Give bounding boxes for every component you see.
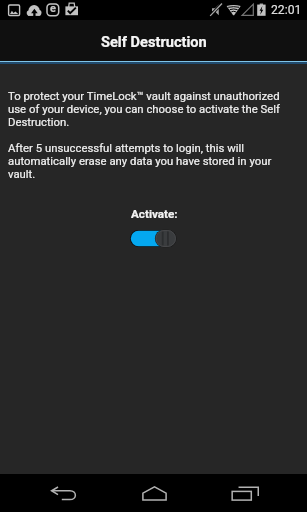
staticText: After 5 unsuccessful attempts to login, … [8,141,299,180]
button[interactable]: Recent apps [223,474,267,512]
staticText: e [50,2,56,15]
staticText: Self Destruction [101,33,207,50]
staticText: Activate: [131,207,178,221]
staticText: To protect your TimeLock™ vault against … [8,89,299,128]
button[interactable]: Home [132,474,176,512]
button[interactable]: Activate self destruction [130,230,176,247]
button[interactable]: Back [42,474,86,512]
staticText: 22:01 [271,3,302,17]
